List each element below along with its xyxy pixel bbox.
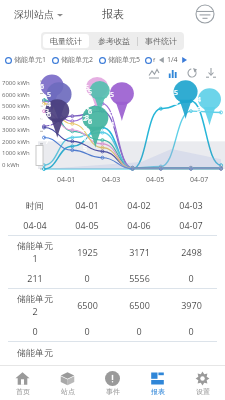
button[interactable]: Series bbox=[145, 57, 152, 64]
button[interactable]: 首页 bbox=[0, 366, 45, 400]
button[interactable]: 0 bbox=[8, 321, 217, 341]
staticText: 0 bbox=[188, 272, 194, 284]
staticText: 1000 kWh bbox=[2, 149, 40, 157]
staticText: 报表 bbox=[151, 387, 165, 396]
staticText: 3171 bbox=[129, 246, 150, 258]
button[interactable]: 报表 bbox=[135, 366, 180, 400]
button[interactable]: 储能单元 2 bbox=[8, 289, 217, 321]
staticText: 04-06 bbox=[127, 219, 151, 231]
staticText: 04-01 bbox=[75, 199, 99, 211]
button[interactable]: 211 bbox=[8, 268, 217, 288]
button[interactable]: 储能单元 1 bbox=[8, 236, 217, 268]
staticText: 1925 bbox=[77, 246, 98, 258]
staticText: 事件统计 bbox=[145, 36, 177, 46]
staticText: 储能单元5 bbox=[108, 55, 141, 65]
staticText: 参考收益 bbox=[98, 36, 130, 46]
staticText: 04-03 bbox=[102, 175, 121, 185]
button[interactable]: 事件 bbox=[90, 366, 135, 400]
button[interactable]: 站点 bbox=[45, 366, 90, 400]
staticText: 04-02 bbox=[127, 199, 151, 211]
staticText: 2498 bbox=[181, 246, 202, 258]
staticText: 5556 bbox=[129, 272, 150, 284]
button[interactable]: Line chart bbox=[148, 67, 160, 79]
staticText: 储能单元 1 bbox=[17, 240, 53, 264]
button[interactable]: Refresh bbox=[186, 67, 198, 79]
button[interactable]: Bar chart bbox=[167, 67, 179, 79]
staticText: 0 kWh bbox=[2, 161, 40, 169]
button[interactable]: 储能单元5 bbox=[99, 55, 141, 65]
button[interactable]: Download bbox=[205, 67, 217, 79]
button[interactable]: Filter bbox=[195, 4, 215, 24]
staticText: 04-01 bbox=[57, 175, 76, 185]
staticText: 设置 bbox=[196, 387, 210, 396]
staticText: 0 bbox=[32, 325, 38, 337]
staticText: 2000 kWh bbox=[2, 138, 40, 146]
button[interactable]: 事件统计 bbox=[138, 33, 184, 49]
staticText: 0 bbox=[136, 325, 142, 337]
staticText: 电量统计 bbox=[50, 36, 82, 46]
button[interactable]: 储能单元2 bbox=[52, 55, 94, 65]
staticText: 0 bbox=[188, 325, 194, 337]
button[interactable]: Previous page bbox=[158, 56, 166, 64]
staticText: 事件 bbox=[106, 387, 120, 396]
staticText: 储能单元2 bbox=[61, 55, 94, 65]
staticText: 1/4 bbox=[167, 55, 178, 65]
staticText: 04-04 bbox=[23, 219, 47, 231]
staticText: f bbox=[153, 56, 156, 64]
staticText: 储能单元1 bbox=[14, 55, 47, 65]
staticText: 首页 bbox=[16, 387, 30, 396]
staticText: 211 bbox=[27, 272, 43, 284]
staticText: 4000 kWh bbox=[2, 114, 40, 122]
staticText: 3000 kWh bbox=[2, 126, 40, 134]
button[interactable]: 参考收益 bbox=[91, 33, 137, 49]
staticText: 0 bbox=[84, 272, 90, 284]
staticText: 时间 bbox=[26, 200, 44, 211]
staticText: 深圳站点 bbox=[14, 8, 54, 21]
staticText: 6500 bbox=[77, 299, 98, 311]
button[interactable]: 储能单元 bbox=[8, 342, 217, 362]
button[interactable]: 电量统计 bbox=[43, 34, 89, 48]
staticText: 04-05 bbox=[75, 219, 99, 231]
staticText: 储能单元 2 bbox=[17, 293, 53, 317]
button[interactable]: 储能单元1 bbox=[5, 55, 47, 65]
button[interactable]: 深圳站点 bbox=[12, 5, 65, 24]
staticText: 报表 bbox=[102, 7, 124, 21]
staticText: 04-07 bbox=[190, 175, 209, 185]
button[interactable]: 时间 bbox=[8, 195, 217, 215]
staticText: 04-03 bbox=[179, 199, 203, 211]
staticText: 04-05 bbox=[146, 175, 165, 185]
button[interactable]: 设置 bbox=[180, 366, 225, 400]
staticText: 6000 kWh bbox=[2, 91, 40, 99]
staticText: 储能单元 bbox=[17, 347, 53, 358]
staticText: 04-07 bbox=[179, 219, 203, 231]
staticText: 6500 bbox=[129, 299, 150, 311]
staticText: 0 bbox=[84, 325, 90, 337]
button[interactable]: Next page bbox=[180, 56, 188, 64]
staticText: 站点 bbox=[61, 387, 75, 396]
staticText: 5000 kWh bbox=[2, 102, 40, 110]
staticText: 7000 kWh bbox=[2, 79, 40, 87]
staticText: 3970 bbox=[181, 299, 202, 311]
button[interactable]: 04-04 bbox=[8, 215, 217, 235]
